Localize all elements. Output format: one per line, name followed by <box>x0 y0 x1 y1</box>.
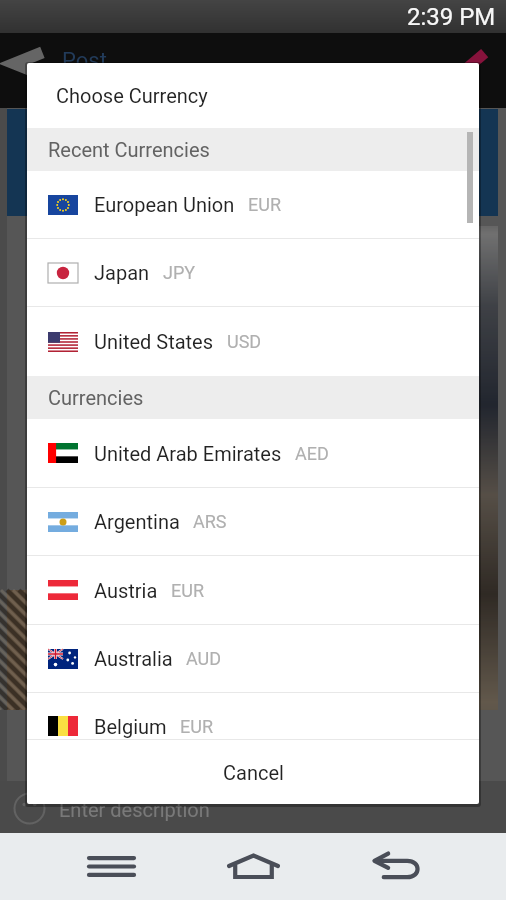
button[interactable]: Back <box>360 841 430 891</box>
staticText: Currencies <box>48 386 144 409</box>
staticText: Austria <box>94 579 158 602</box>
button[interactable]: Australia <box>27 625 479 692</box>
staticText: Australia <box>94 647 173 670</box>
button[interactable]: United States <box>27 307 479 376</box>
staticText: Recent Currencies <box>48 138 210 161</box>
staticText: United Arab Emirates <box>94 442 282 465</box>
button[interactable]: Argentina <box>27 488 479 555</box>
button[interactable]: United Arab Emirates <box>27 419 479 487</box>
staticText: EUR <box>248 194 281 215</box>
staticText: European Union <box>94 193 235 216</box>
staticText: USD <box>227 331 262 352</box>
staticText: EUR <box>180 716 213 737</box>
staticText: ARS <box>193 511 227 532</box>
staticText: Belgium <box>94 715 167 738</box>
button[interactable]: Home <box>218 841 288 891</box>
button[interactable]: Japan <box>27 239 479 306</box>
button[interactable]: European Union <box>27 171 479 238</box>
staticText: AED <box>295 443 329 464</box>
staticText: EUR <box>171 580 204 601</box>
button[interactable]: Austria <box>27 556 479 624</box>
staticText: 2:39 PM <box>407 3 496 31</box>
staticText: United States <box>94 330 214 353</box>
button[interactable]: Belgium <box>27 693 479 739</box>
button[interactable]: Recent apps <box>76 841 146 891</box>
staticText: Post <box>62 48 107 74</box>
staticText: Cancel <box>223 761 284 784</box>
staticText: Choose Currency <box>56 84 208 107</box>
staticText: Argentina <box>94 510 180 533</box>
button[interactable]: Cancel <box>27 740 479 804</box>
staticText: AUD <box>186 648 222 669</box>
staticText: JPY <box>163 262 196 283</box>
staticText: Enter description <box>59 798 210 821</box>
staticText: Japan <box>94 261 150 284</box>
